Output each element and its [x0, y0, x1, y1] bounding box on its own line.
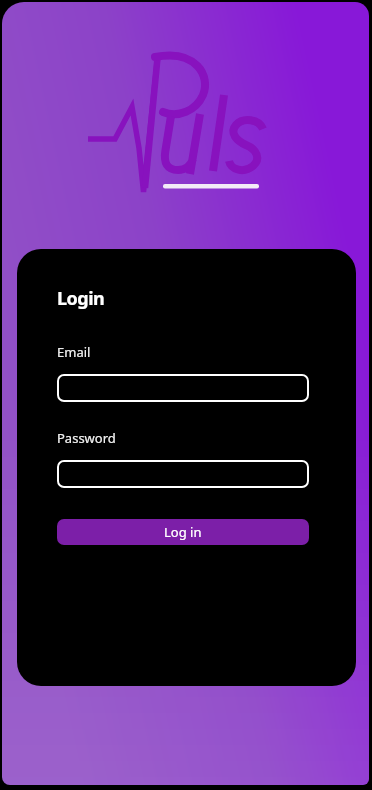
staticText: Password — [57, 429, 116, 447]
button[interactable]: Log in — [57, 519, 309, 545]
button[interactable] — [57, 460, 309, 488]
staticText: Email — [57, 343, 91, 361]
staticText: Log in — [164, 523, 202, 541]
button[interactable] — [57, 374, 309, 402]
staticText: Login — [57, 286, 105, 311]
